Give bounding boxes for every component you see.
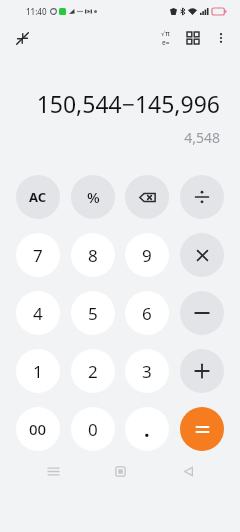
button[interactable]: Equals bbox=[180, 407, 224, 451]
staticText: 0 bbox=[88, 418, 98, 441]
button[interactable]: Divide bbox=[180, 175, 224, 219]
button[interactable]: 5 bbox=[71, 291, 115, 335]
button[interactable]: 4 bbox=[16, 291, 60, 335]
button[interactable]: Backspace bbox=[125, 175, 169, 219]
staticText: 150,544−145,996 bbox=[36, 88, 220, 119]
staticText: 00 bbox=[29, 419, 47, 439]
staticText: 2 bbox=[88, 360, 98, 383]
staticText: √π bbox=[161, 29, 170, 38]
staticText: e= bbox=[162, 38, 170, 47]
button[interactable]: 1 bbox=[16, 349, 60, 393]
staticText: 8 bbox=[88, 244, 98, 267]
button[interactable]: Back bbox=[173, 459, 203, 483]
staticText: % bbox=[87, 187, 100, 207]
button[interactable]: % bbox=[71, 175, 115, 219]
button[interactable]: AC bbox=[16, 175, 60, 219]
staticText: 5 bbox=[88, 302, 98, 325]
button[interactable]: Collapse bbox=[10, 26, 34, 50]
button[interactable]: Minus bbox=[180, 291, 224, 335]
button[interactable]: 0 bbox=[71, 407, 115, 451]
staticText: AC bbox=[29, 188, 47, 206]
staticText: . bbox=[144, 416, 150, 443]
staticText: 11:40 bbox=[26, 6, 47, 17]
button[interactable]: More options bbox=[208, 25, 234, 51]
button[interactable]: 9 bbox=[125, 233, 169, 277]
button[interactable]: Scientific calculator bbox=[152, 25, 178, 51]
button[interactable]: 00 bbox=[16, 407, 60, 451]
button[interactable]: Plus bbox=[180, 349, 224, 393]
button[interactable]: 8 bbox=[71, 233, 115, 277]
staticText: 4 bbox=[33, 302, 43, 325]
button[interactable]: 2 bbox=[71, 349, 115, 393]
staticText: 1 bbox=[33, 360, 43, 383]
staticText: 3 bbox=[142, 360, 152, 383]
button[interactable]: 3 bbox=[125, 349, 169, 393]
staticText: 6 bbox=[142, 302, 152, 325]
button[interactable]: 7 bbox=[16, 233, 60, 277]
button[interactable]: 6 bbox=[125, 291, 169, 335]
button[interactable]: Multiply bbox=[180, 233, 224, 277]
staticText: 4,548 bbox=[184, 128, 220, 147]
button[interactable]: Recent apps bbox=[38, 459, 68, 483]
staticText: 9 bbox=[142, 244, 152, 267]
button[interactable]: Home bbox=[105, 459, 135, 483]
button[interactable]: Unit converter bbox=[180, 25, 206, 51]
button[interactable]: . bbox=[125, 407, 169, 451]
staticText: 7 bbox=[33, 244, 43, 267]
